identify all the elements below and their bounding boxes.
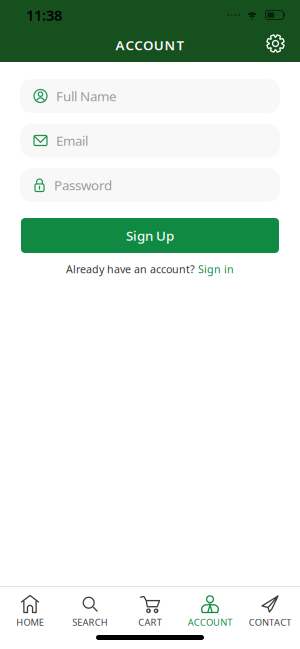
staticText: 11:38 (26, 5, 62, 25)
button[interactable]: CONTACT (240, 595, 300, 628)
button[interactable]: Sign in (198, 262, 234, 276)
staticText: Full Name (56, 87, 117, 105)
staticText: ACCOUNT (116, 36, 184, 54)
staticText: Already have an account? (66, 262, 195, 276)
staticText: CONTACT (249, 616, 291, 628)
button[interactable]: Password (20, 168, 280, 202)
staticText: SEARCH (72, 616, 108, 628)
staticText: Sign in (198, 262, 234, 276)
button[interactable]: ACCOUNT (180, 595, 240, 628)
staticText: ACCOUNT (188, 616, 232, 628)
staticText: CART (138, 616, 162, 628)
button[interactable]: Sign Up (21, 218, 279, 253)
staticText: Password (54, 176, 112, 194)
button[interactable]: Settings (266, 35, 285, 54)
staticText: HOME (16, 616, 44, 628)
button[interactable]: HOME (0, 595, 60, 628)
button[interactable]: CART (120, 595, 180, 628)
button[interactable]: Full Name (20, 79, 280, 113)
staticText: Email (56, 132, 88, 149)
button[interactable]: SEARCH (60, 595, 120, 628)
staticText: Sign Up (126, 227, 174, 244)
button[interactable]: Email (20, 123, 280, 157)
